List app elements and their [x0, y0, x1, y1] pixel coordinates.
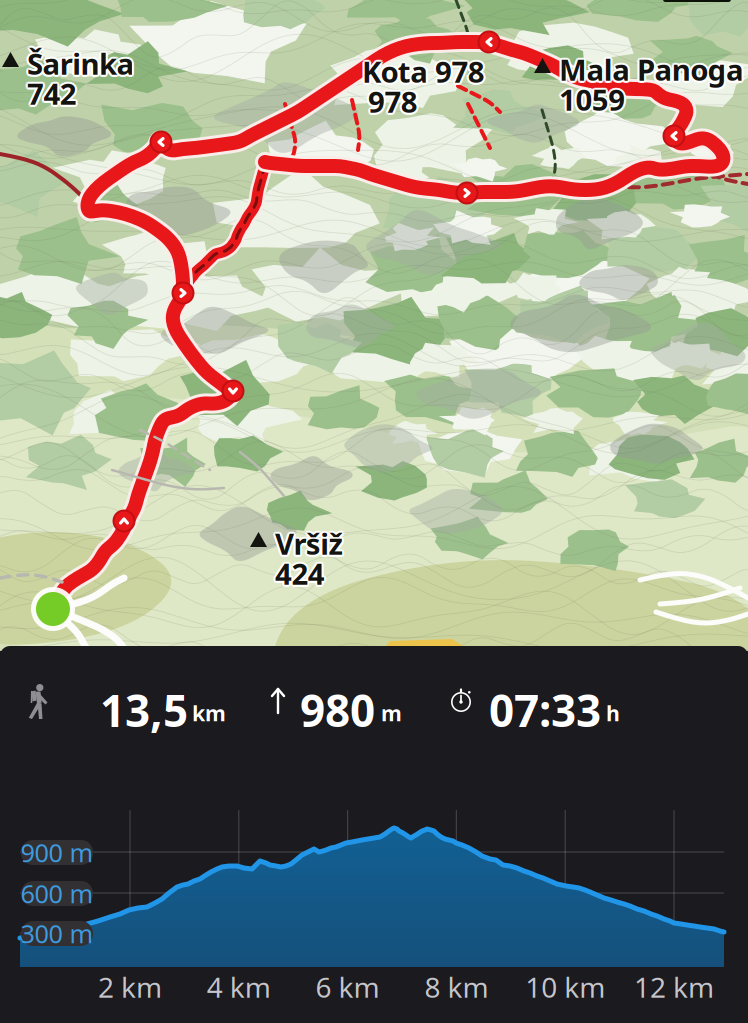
staticText: 978 [366, 80, 416, 119]
staticText: 1059 [559, 80, 625, 119]
staticText: 1059 [559, 78, 625, 117]
staticText: 978 [370, 84, 419, 123]
staticText: 742 [29, 74, 79, 113]
staticText: 742 [27, 72, 77, 111]
staticText: 980 [300, 681, 375, 739]
staticText: 13,5 [100, 681, 188, 739]
staticText: 1059 [557, 78, 624, 117]
staticText: 742 [25, 72, 75, 111]
staticText: 2 km [98, 968, 162, 1006]
staticText: 978 [366, 82, 416, 121]
staticText: Vršiž [273, 524, 340, 563]
staticText: Šarinka [27, 42, 134, 81]
staticText: Vršiž [275, 526, 343, 565]
staticText: Šarinka [29, 44, 137, 83]
staticText: 1059 [557, 82, 624, 121]
staticText: 424 [275, 554, 325, 593]
staticText: Kota 978 [360, 54, 483, 93]
staticText: 300 m [20, 917, 93, 950]
staticText: Mala Panoga [561, 48, 746, 87]
staticText: 1059 [561, 80, 627, 119]
staticText: Šarinka [29, 46, 136, 85]
staticText: 424 [273, 556, 323, 595]
staticText: Mala Panoga [557, 52, 742, 91]
staticText: 1059 [561, 82, 627, 121]
staticText: 978 [366, 84, 416, 123]
staticText: 978 [368, 82, 418, 121]
staticText: 4 km [207, 968, 271, 1006]
staticText: 424 [277, 552, 326, 591]
staticText: 978 [368, 84, 418, 123]
staticText: Mala Panoga [557, 48, 742, 87]
staticText: Mala Panoga [559, 50, 744, 89]
staticText: 07:33 [489, 681, 601, 739]
staticText: Vršiž [277, 522, 344, 561]
staticText: 978 [370, 80, 419, 119]
staticText: 742 [27, 74, 77, 113]
staticText: Vršiž [277, 526, 344, 565]
staticText: km [192, 699, 226, 727]
staticText: Šarinka [25, 44, 132, 83]
staticText: 12 km [634, 968, 714, 1006]
staticText: Vršiž [277, 524, 345, 563]
staticText: Kota 978 [364, 50, 486, 89]
staticText: 1059 [561, 78, 627, 117]
staticText: 900 m [20, 836, 93, 869]
staticText: Kota 978 [362, 50, 485, 89]
staticText: Šarinka [25, 46, 133, 85]
staticText: 1059 [559, 82, 625, 121]
staticText: Kota 978 [364, 52, 487, 91]
staticText: Kota 978 [360, 50, 483, 89]
staticText: 978 [370, 82, 420, 121]
staticText: Kota 978 [362, 54, 485, 93]
staticText: Šarinka [27, 44, 134, 83]
staticText: Vršiž [273, 522, 341, 561]
staticText: 742 [27, 76, 77, 115]
staticText: 8 km [424, 968, 488, 1006]
staticText: 742 [25, 74, 75, 113]
staticText: Šarinka [29, 42, 136, 81]
staticText: 424 [273, 552, 323, 591]
staticText: 424 [275, 552, 325, 591]
staticText: Mala Panoga [559, 48, 744, 87]
staticText: Vršiž [275, 524, 343, 563]
staticText: 978 [368, 80, 418, 119]
staticText: 424 [277, 556, 326, 595]
staticText: Mala Panoga [561, 50, 746, 89]
staticText: Kota 978 [360, 52, 483, 91]
staticText: Kota 978 [364, 54, 486, 93]
staticText: Kota 978 [362, 52, 485, 91]
staticText: 424 [277, 554, 327, 593]
staticText: 742 [29, 76, 78, 115]
staticText: 742 [25, 76, 75, 115]
staticText: h [606, 699, 620, 727]
staticText: 10 km [525, 968, 605, 1006]
staticText: Mala Panoga [561, 52, 746, 91]
staticText: 424 [275, 556, 325, 595]
staticText: Mala Panoga [557, 50, 742, 89]
staticText: 742 [29, 72, 78, 111]
staticText: Vršiž [273, 526, 341, 565]
staticText: 1059 [557, 80, 623, 119]
staticText: Šarinka [25, 42, 133, 81]
staticText: 600 m [20, 877, 93, 910]
staticText: Šarinka [27, 46, 134, 85]
staticText: 6 km [316, 968, 380, 1006]
staticText: Vršiž [275, 522, 343, 561]
staticText: 424 [273, 554, 323, 593]
staticText: m [381, 699, 402, 727]
staticText: Mala Panoga [559, 52, 744, 91]
